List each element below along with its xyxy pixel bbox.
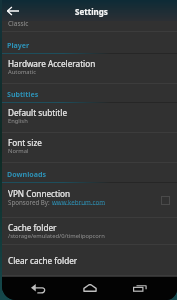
staticText: Subtitles [7, 89, 39, 99]
button[interactable]: Default subtitle [2, 103, 177, 133]
button[interactable]: Recent apps [129, 277, 151, 299]
staticText: Downloads [7, 169, 47, 179]
staticText: Classic [8, 19, 29, 28]
button[interactable]: Back [27, 277, 49, 299]
staticText: www.kebrum.com [52, 198, 105, 206]
staticText: Hardware Acceleration [8, 58, 96, 69]
staticText: English [8, 117, 28, 125]
button[interactable]: Font size [2, 133, 177, 163]
button[interactable]: Cache folder [2, 218, 177, 245]
staticText: VPN Connection [8, 188, 71, 199]
button[interactable]: VPN Connection [2, 183, 177, 218]
button[interactable]: Classic [2, 21, 177, 32]
button[interactable]: Home [79, 277, 101, 299]
button[interactable]: Hardware Acceleration [2, 54, 177, 84]
staticText: Default subtitle [8, 107, 68, 118]
staticText: Automatic [8, 68, 36, 76]
button[interactable]: Back [2, 0, 25, 21]
staticText: Clear cache folder [8, 255, 78, 266]
staticText: Sponsored By: [8, 198, 52, 206]
staticText: Font size [8, 137, 42, 148]
button[interactable]: Clear cache folder [2, 245, 177, 276]
staticText: /storage/emulated/0/timelipopcorn [8, 232, 105, 240]
staticText: Normal [8, 147, 29, 155]
staticText: Settings [75, 6, 108, 17]
staticText: Cache folder [8, 222, 57, 233]
staticText: Player [7, 40, 30, 50]
